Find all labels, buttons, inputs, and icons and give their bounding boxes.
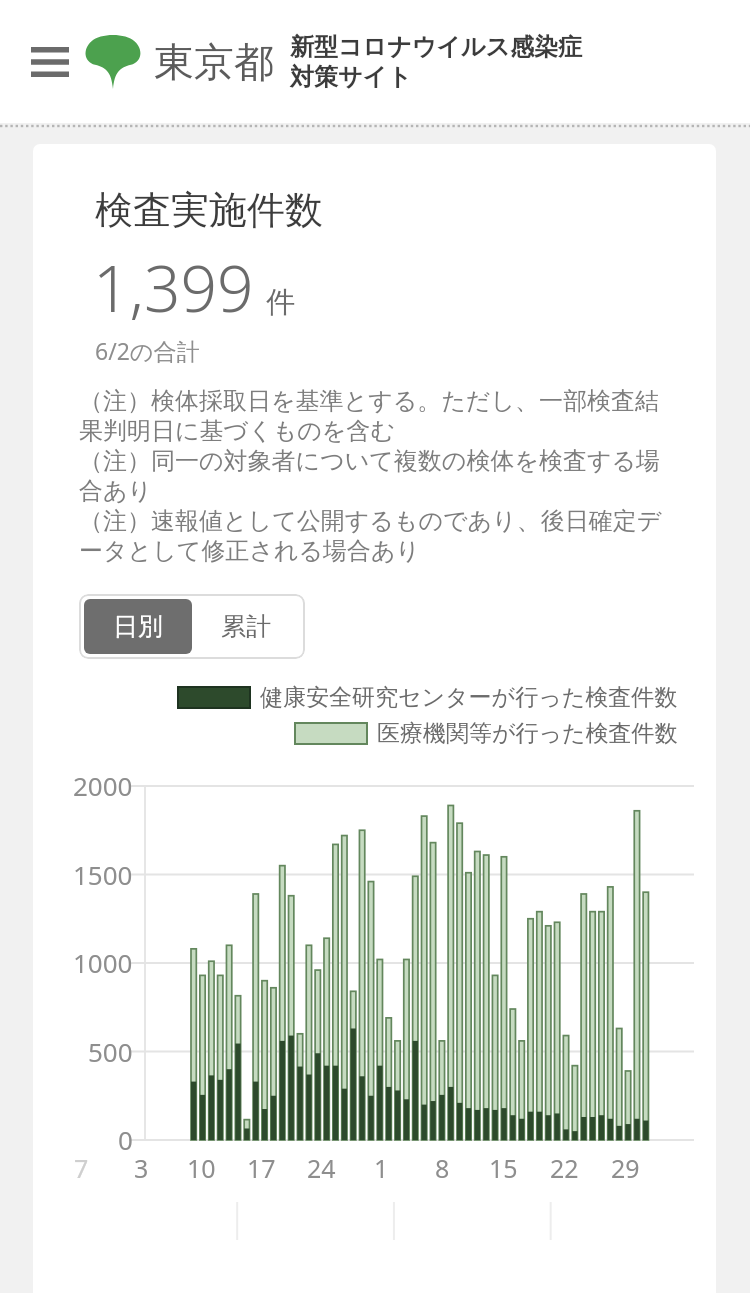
staticText: 2000 xyxy=(73,768,133,803)
staticText: 累計 xyxy=(221,611,271,642)
staticText: 0 xyxy=(118,1122,133,1157)
staticText: 1,399 xyxy=(93,244,254,331)
button[interactable]: 累計 xyxy=(192,599,300,654)
staticText: 件 xyxy=(266,284,295,321)
staticText: 1000 xyxy=(73,945,133,980)
staticText: 1 xyxy=(374,1151,389,1185)
staticText: 15 xyxy=(489,1151,518,1185)
staticText: 東京都 xyxy=(154,37,274,87)
staticText: （注）同一の対象者について複数の検体を検査する場 xyxy=(79,446,661,476)
staticText: 10 xyxy=(187,1151,216,1185)
staticText: 8 xyxy=(435,1151,450,1185)
button[interactable]: Menu xyxy=(22,34,78,90)
staticText: 17 xyxy=(247,1151,276,1185)
staticText: 健康安全研究センターが行った検査件数 xyxy=(260,683,678,712)
button[interactable]: 日別 xyxy=(84,599,192,654)
staticText: 22 xyxy=(550,1151,579,1185)
staticText: 医療機関等が行った検査件数 xyxy=(377,719,678,748)
staticText: 7 xyxy=(74,1151,89,1185)
staticText: 6/2の合計 xyxy=(95,335,200,366)
staticText: 500 xyxy=(88,1034,133,1069)
staticText: 検査実施件数 xyxy=(95,186,323,234)
staticText: 対策サイト xyxy=(290,62,412,92)
staticText: 果判明日に基づくものを含む xyxy=(79,416,395,446)
button[interactable]: Tokyo Metropolitan Government logo xyxy=(84,34,142,90)
staticText: （注）速報値として公開するものであり、後日確定デ xyxy=(79,506,662,536)
staticText: 29 xyxy=(611,1151,640,1185)
staticText: 合あり xyxy=(79,476,153,506)
staticText: （注）検体採取日を基準とする。ただし、一部検査結 xyxy=(79,386,659,416)
staticText: 24 xyxy=(307,1151,336,1185)
staticText: 3 xyxy=(134,1151,149,1185)
staticText: 日別 xyxy=(113,611,163,642)
staticText: 1500 xyxy=(73,857,133,892)
staticText: 新型コロナウイルス感染症 xyxy=(290,32,582,62)
staticText: ータとして修正される場合あり xyxy=(79,536,421,566)
